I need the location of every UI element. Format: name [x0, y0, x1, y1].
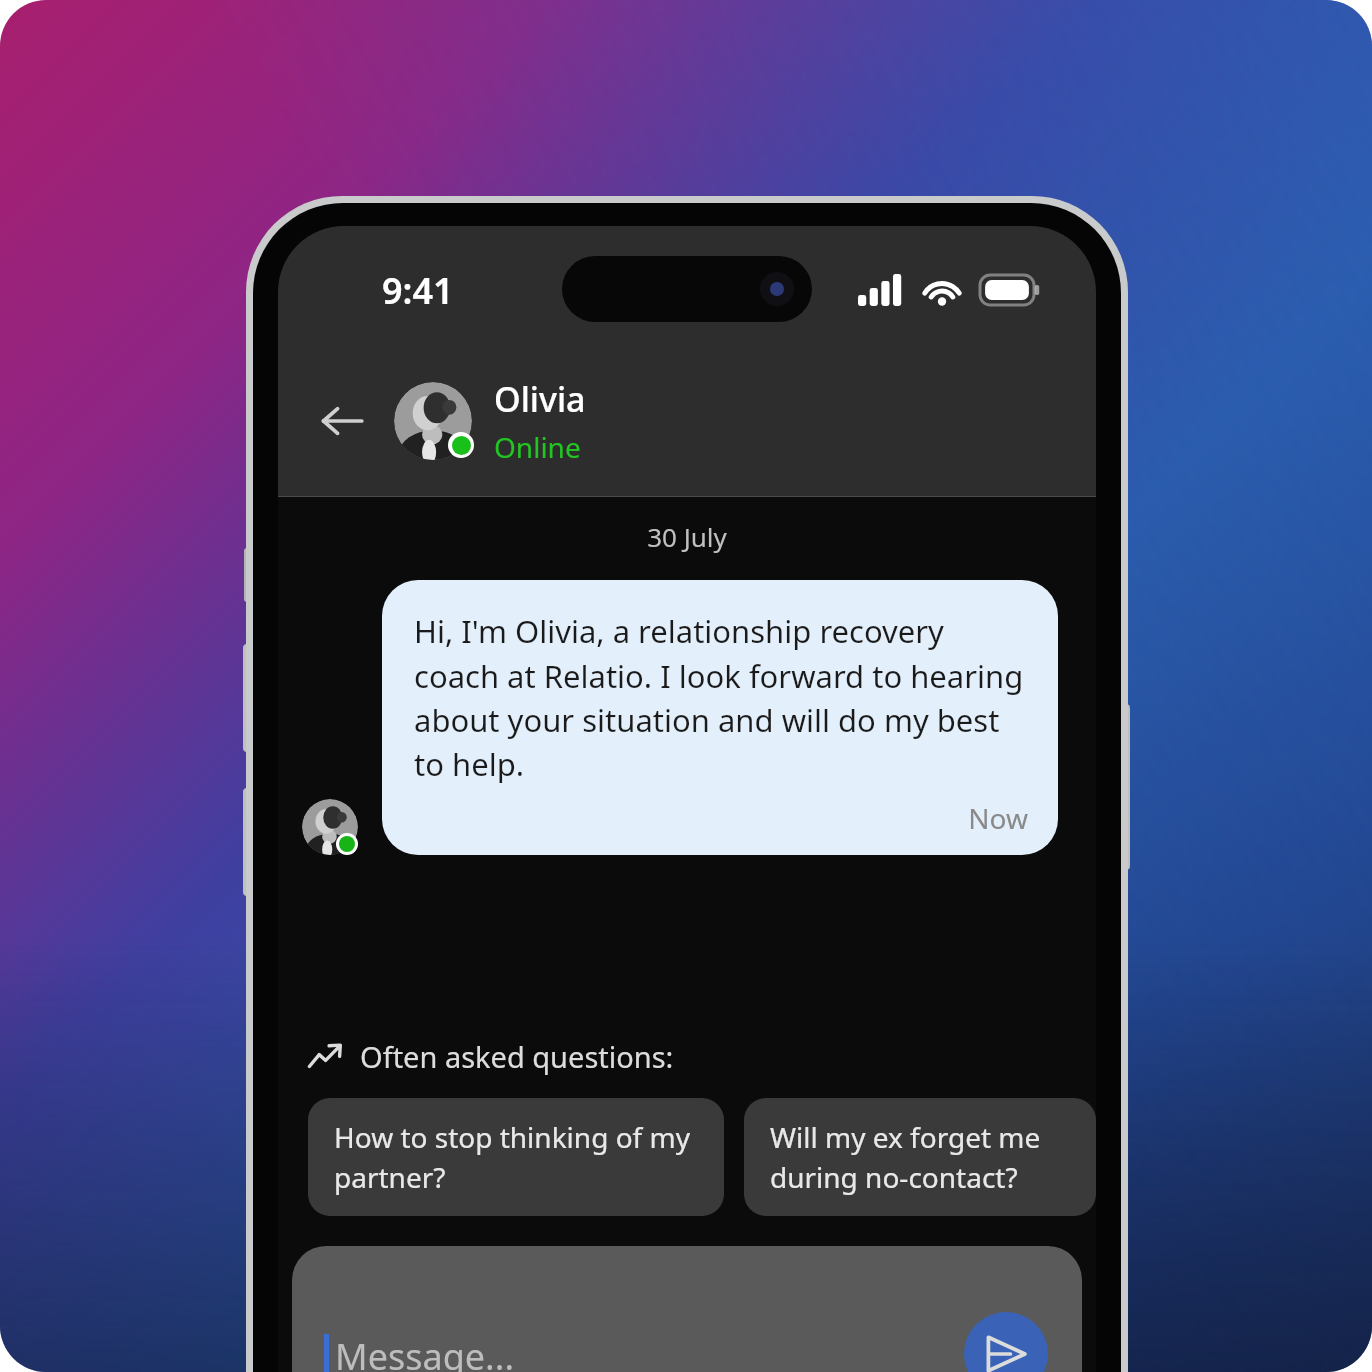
staticText: 30 July [278, 519, 1096, 554]
staticText: Often asked questions: [360, 1037, 674, 1076]
staticText: 9:41 [382, 266, 454, 315]
button[interactable]: Will my ex forget me during no-contact? [744, 1098, 1096, 1216]
button[interactable]: Hi, I'm Olivia, a relationship recovery … [382, 580, 1058, 855]
button[interactable]: Message... [335, 1332, 515, 1372]
staticText: How to stop thinking of my partner? [334, 1118, 698, 1197]
staticText: Olivia [494, 376, 586, 422]
staticText: Now [414, 799, 1028, 837]
staticText: Will my ex forget me during no-contact? [770, 1118, 1070, 1197]
button[interactable]: How to stop thinking of my partner? [308, 1098, 724, 1216]
staticText: Online [494, 428, 581, 466]
staticText: Hi, I'm Olivia, a relationship recovery … [414, 610, 1028, 785]
button[interactable]: Back [306, 385, 378, 457]
button[interactable]: Send [964, 1312, 1048, 1372]
